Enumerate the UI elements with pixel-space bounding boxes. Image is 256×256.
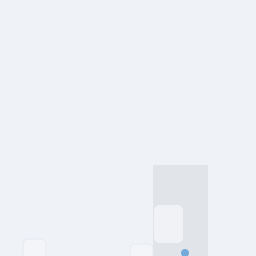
button[interactable]: Featured panel <box>153 165 208 256</box>
